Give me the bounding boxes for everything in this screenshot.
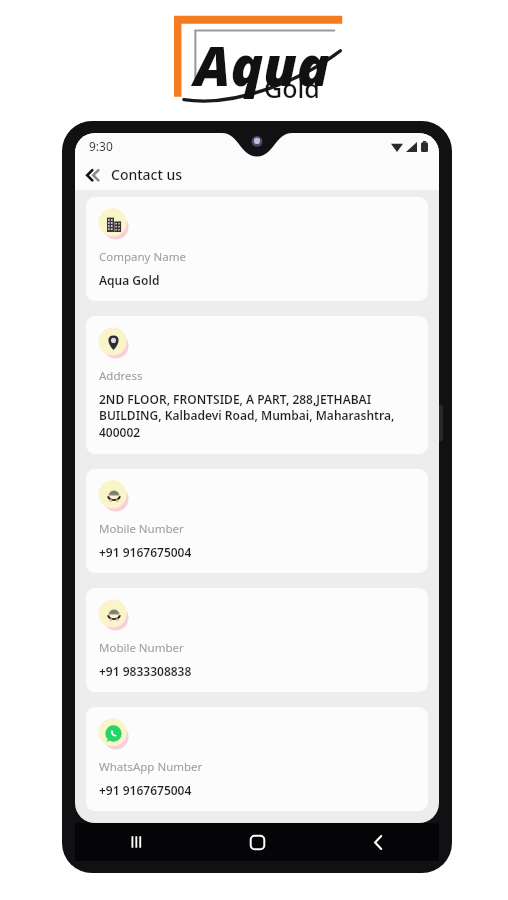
staticText: Aqua	[194, 28, 330, 102]
staticText: Mobile Number	[99, 640, 184, 656]
staticText: +91 9833308838	[99, 663, 192, 679]
staticText: Gold	[264, 71, 320, 105]
button[interactable]: Back	[318, 834, 439, 851]
staticText: WhatsApp Number	[99, 759, 203, 775]
staticText: Contact us	[111, 165, 183, 184]
button[interactable]: Back	[75, 159, 109, 190]
button[interactable]: Home	[197, 834, 318, 851]
button[interactable]: Mobile Number	[86, 588, 428, 692]
staticText: +91 9167675004	[99, 782, 192, 798]
staticText: +91 9167675004	[99, 544, 192, 560]
button[interactable]: Address	[86, 316, 428, 454]
staticText: Mobile Number	[99, 521, 184, 537]
staticText: 2ND FLOOR, FRONTSIDE, A PART, 288,JETHAB…	[99, 391, 415, 441]
staticText: Company Name	[99, 249, 186, 265]
staticText: 9:30	[89, 138, 113, 154]
button[interactable]: Company Name	[86, 197, 428, 301]
button[interactable]: Recent apps	[75, 833, 197, 851]
staticText: Aqua Gold	[99, 272, 160, 288]
staticText: Address	[99, 368, 143, 384]
button[interactable]: Mobile Number	[86, 469, 428, 573]
button[interactable]: WhatsApp Number	[86, 707, 428, 811]
